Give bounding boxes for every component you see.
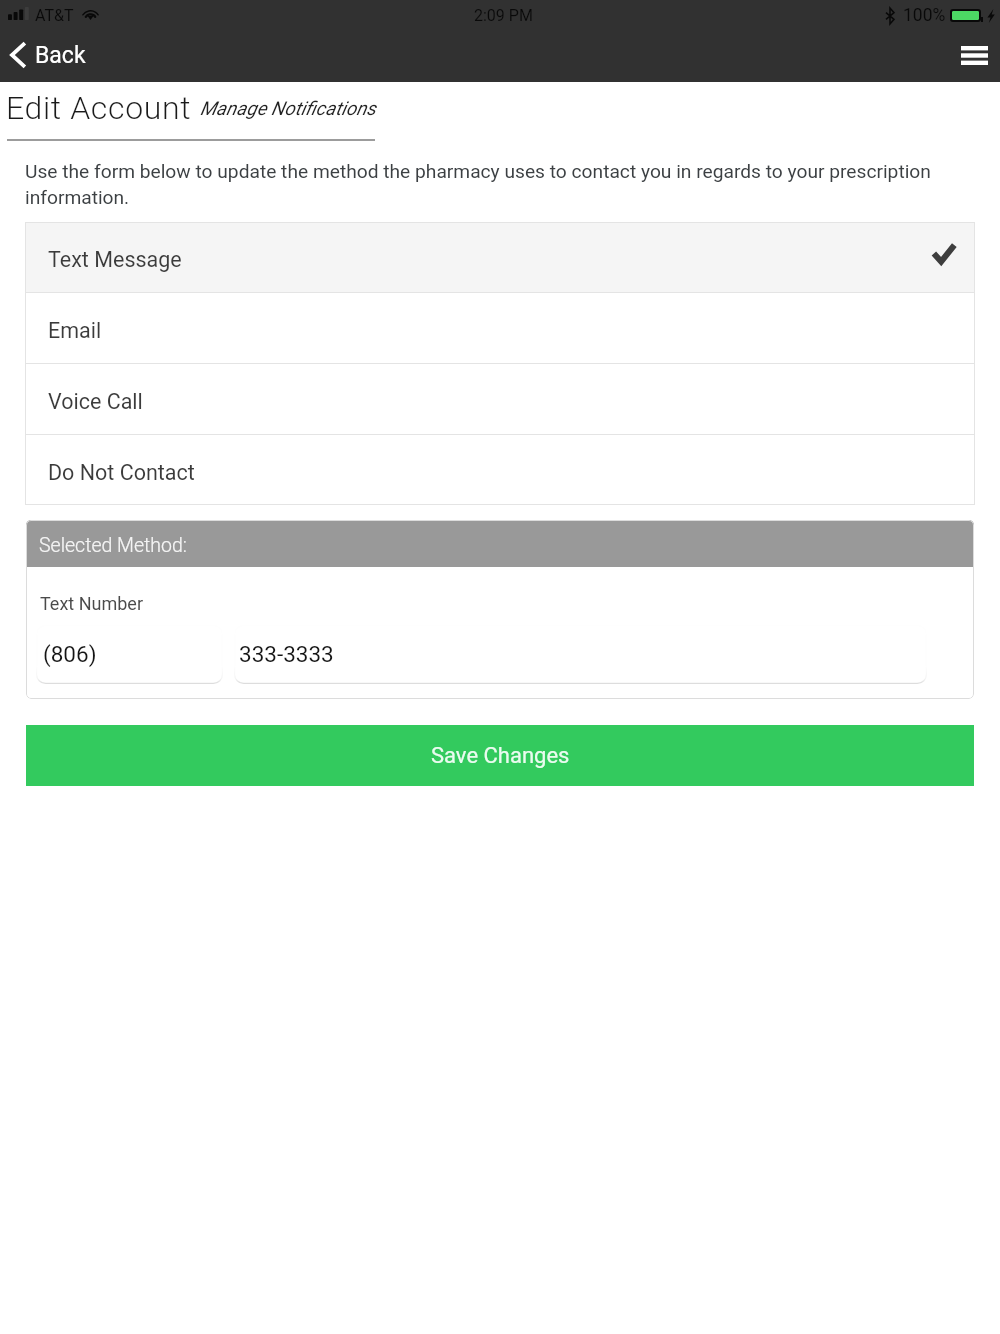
staticText: Do Not Contact bbox=[48, 460, 195, 485]
button[interactable]: Menu bbox=[945, 34, 1000, 79]
staticText: Text Number bbox=[40, 593, 143, 614]
staticText: AT&T bbox=[35, 6, 74, 25]
staticText: Use the form below to update the method … bbox=[25, 160, 945, 209]
button[interactable]: Back bbox=[0, 37, 100, 76]
button[interactable]: Email bbox=[25, 293, 975, 363]
staticText: 2:09 PM bbox=[474, 6, 533, 25]
button[interactable]: Voice Call bbox=[25, 364, 975, 434]
staticText: Manage Notifications bbox=[200, 97, 376, 119]
staticText: Voice Call bbox=[48, 389, 143, 414]
staticText: Text Message bbox=[48, 247, 182, 272]
button[interactable]: Text Message bbox=[25, 222, 975, 292]
staticText: (806) bbox=[43, 641, 97, 667]
button[interactable]: Save Changes bbox=[26, 725, 974, 786]
staticText: Back bbox=[35, 42, 86, 69]
staticText: 100% bbox=[903, 5, 946, 26]
button[interactable]: 333-3333 bbox=[234, 625, 927, 684]
button[interactable]: (806) bbox=[36, 625, 223, 684]
staticText: 333-3333 bbox=[239, 641, 334, 667]
staticText: Save Changes bbox=[431, 743, 570, 769]
staticText: Email bbox=[48, 318, 102, 343]
button[interactable]: Do Not Contact bbox=[25, 435, 975, 505]
staticText: Selected Method: bbox=[39, 534, 187, 557]
staticText: Edit Account bbox=[6, 89, 192, 127]
